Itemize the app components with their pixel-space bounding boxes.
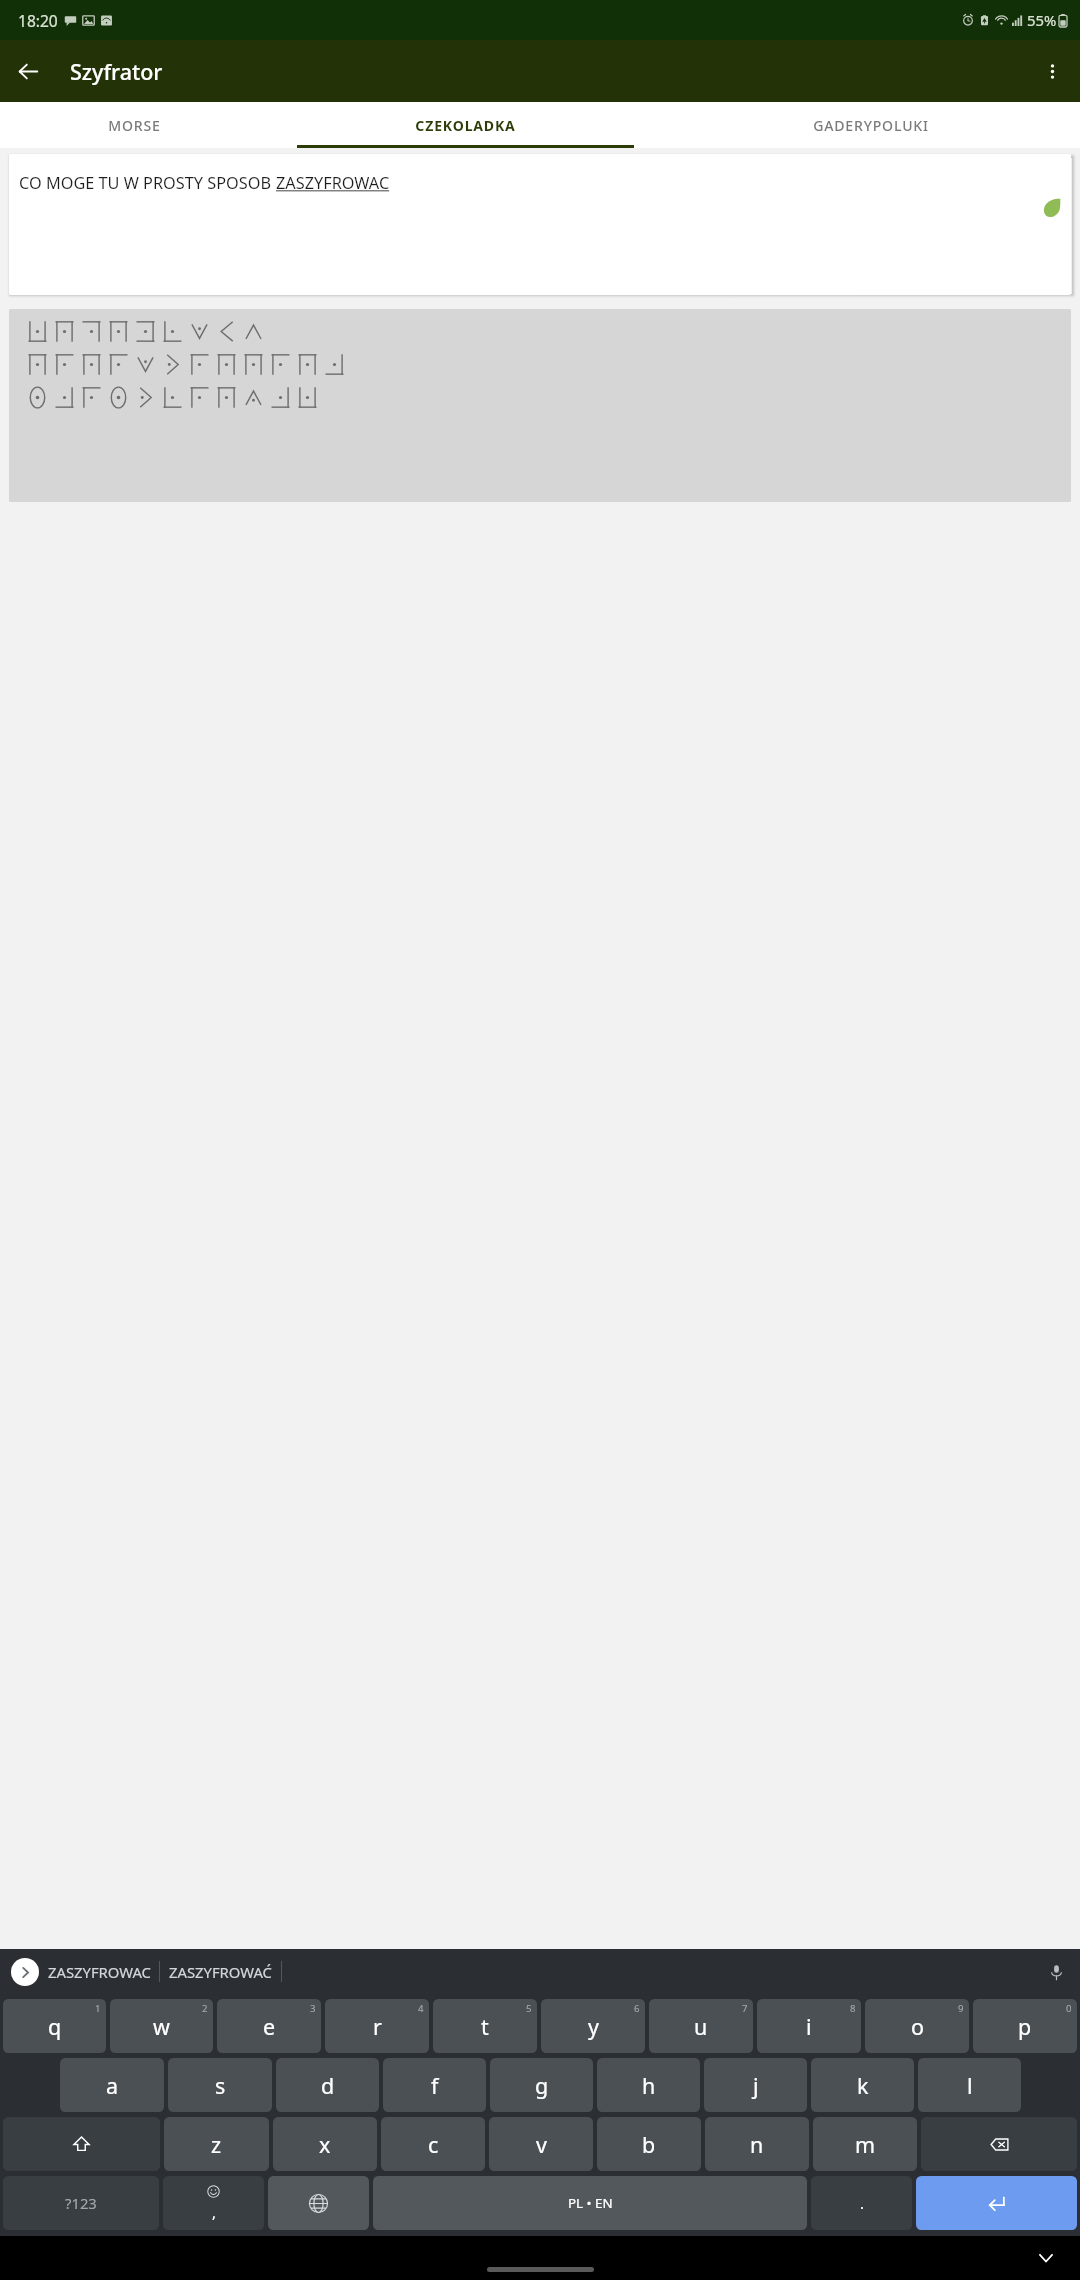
button[interactable]: a [60, 2058, 164, 2112]
staticText: , [212, 2202, 216, 2222]
button[interactable]: GADERYPOLUKI [661, 102, 1080, 148]
staticText: u [694, 2012, 708, 2041]
staticText: c [428, 2130, 439, 2159]
staticText: GADERYPOLUKI [813, 116, 929, 135]
staticText: f [431, 2071, 439, 2100]
button[interactable]: w [110, 1999, 213, 2053]
staticText: r [373, 2012, 382, 2041]
button[interactable]: h [597, 2058, 700, 2112]
staticText: k [857, 2071, 869, 2100]
staticText: h [642, 2071, 656, 2100]
button[interactable]: m [813, 2117, 917, 2171]
button[interactable]: . [811, 2176, 912, 2230]
button[interactable]: Back [10, 53, 47, 90]
button[interactable]: y [541, 1999, 645, 2053]
staticText: a [106, 2071, 119, 2100]
staticText: d [321, 2071, 335, 2100]
staticText: 9 [958, 2002, 964, 2015]
staticText: x [319, 2130, 331, 2159]
staticText: i [806, 2012, 812, 2041]
staticText: ?123 [65, 2193, 97, 2213]
button[interactable]: f [383, 2058, 486, 2112]
button[interactable]: PL • EN [373, 2176, 807, 2230]
staticText: b [642, 2130, 656, 2159]
button[interactable]: l [918, 2058, 1021, 2112]
button[interactable]: i [757, 1999, 861, 2053]
staticText: 7 [742, 2002, 748, 2015]
staticText: . [860, 2193, 864, 2213]
button[interactable]: g [490, 2058, 593, 2112]
button[interactable]: CO MOGE TU W PROSTY SPOSOB [9, 154, 1071, 295]
staticText: j [753, 2071, 759, 2100]
button[interactable]: CZEKOLADKA [269, 102, 661, 148]
staticText: 1 [95, 2002, 101, 2015]
button[interactable]: t [433, 1999, 537, 2053]
button[interactable]: o [865, 1999, 969, 2053]
button[interactable] [9, 309, 1071, 502]
button[interactable]: k [811, 2058, 914, 2112]
button[interactable]: Hide keyboard [1031, 2243, 1061, 2273]
button[interactable]: e [217, 1999, 321, 2053]
button[interactable]: Backspace [921, 2117, 1077, 2171]
button[interactable]: c [381, 2117, 485, 2171]
staticText: 2 [202, 2002, 208, 2015]
button[interactable]: Emoji, comma [163, 2176, 264, 2230]
staticText: s [215, 2071, 226, 2100]
button[interactable]: ?123 [3, 2176, 159, 2230]
staticText: t [481, 2012, 489, 2041]
button[interactable]: n [705, 2117, 809, 2171]
button[interactable]: j [704, 2058, 807, 2112]
staticText: 6 [634, 2002, 640, 2015]
button[interactable]: u [649, 1999, 753, 2053]
button[interactable]: Shift [3, 2117, 160, 2171]
staticText: 0 [1066, 2002, 1072, 2015]
staticText: Szyfrator [70, 57, 163, 86]
staticText: CZEKOLADKA [415, 116, 516, 135]
button[interactable]: s [168, 2058, 272, 2112]
button[interactable]: p [973, 1999, 1077, 2053]
staticText: v [536, 2130, 547, 2159]
button[interactable]: q [3, 1999, 106, 2053]
staticText: ZASZYFROWAC [276, 172, 390, 194]
staticText: g [535, 2071, 549, 2100]
button[interactable]: v [489, 2117, 593, 2171]
staticText: e [263, 2012, 276, 2041]
staticText: MORSE [108, 116, 161, 135]
staticText: ZASZYFROWAC [48, 1962, 151, 1982]
button[interactable]: Change language [268, 2176, 369, 2230]
staticText: l [967, 2071, 973, 2100]
button[interactable]: Voice input [1043, 1959, 1069, 1985]
button[interactable]: b [597, 2117, 701, 2171]
button[interactable]: Enter [916, 2176, 1077, 2230]
staticText: 5 [526, 2002, 532, 2015]
staticText: 8 [850, 2002, 856, 2015]
button[interactable]: More suggestions [11, 1958, 39, 1986]
button[interactable]: More options [1034, 53, 1071, 90]
staticText: 3 [310, 2002, 316, 2015]
staticText: 55% [1027, 10, 1057, 30]
button[interactable]: MORSE [0, 102, 269, 148]
button[interactable]: r [325, 1999, 429, 2053]
button[interactable]: ZASZYFROWAĆ [166, 1962, 275, 1982]
staticText: y [588, 2012, 599, 2041]
staticText: z [211, 2130, 222, 2159]
staticText: w [153, 2012, 170, 2041]
button[interactable]: x [273, 2117, 377, 2171]
button[interactable]: ZASZYFROWAC [45, 1962, 154, 1982]
staticText: PL • EN [568, 2194, 613, 2212]
button[interactable]: z [164, 2117, 269, 2171]
staticText: 4 [418, 2002, 424, 2015]
staticText: ZASZYFROWAĆ [169, 1962, 272, 1982]
staticText: p [1018, 2012, 1032, 2041]
staticText: o [911, 2012, 924, 2041]
button[interactable]: d [276, 2058, 379, 2112]
staticText: q [48, 2012, 62, 2041]
staticText: n [750, 2130, 764, 2159]
staticText: 18:20 [18, 10, 58, 31]
staticText: CO MOGE TU W PROSTY SPOSOB [19, 172, 276, 194]
staticText: m [855, 2130, 876, 2159]
